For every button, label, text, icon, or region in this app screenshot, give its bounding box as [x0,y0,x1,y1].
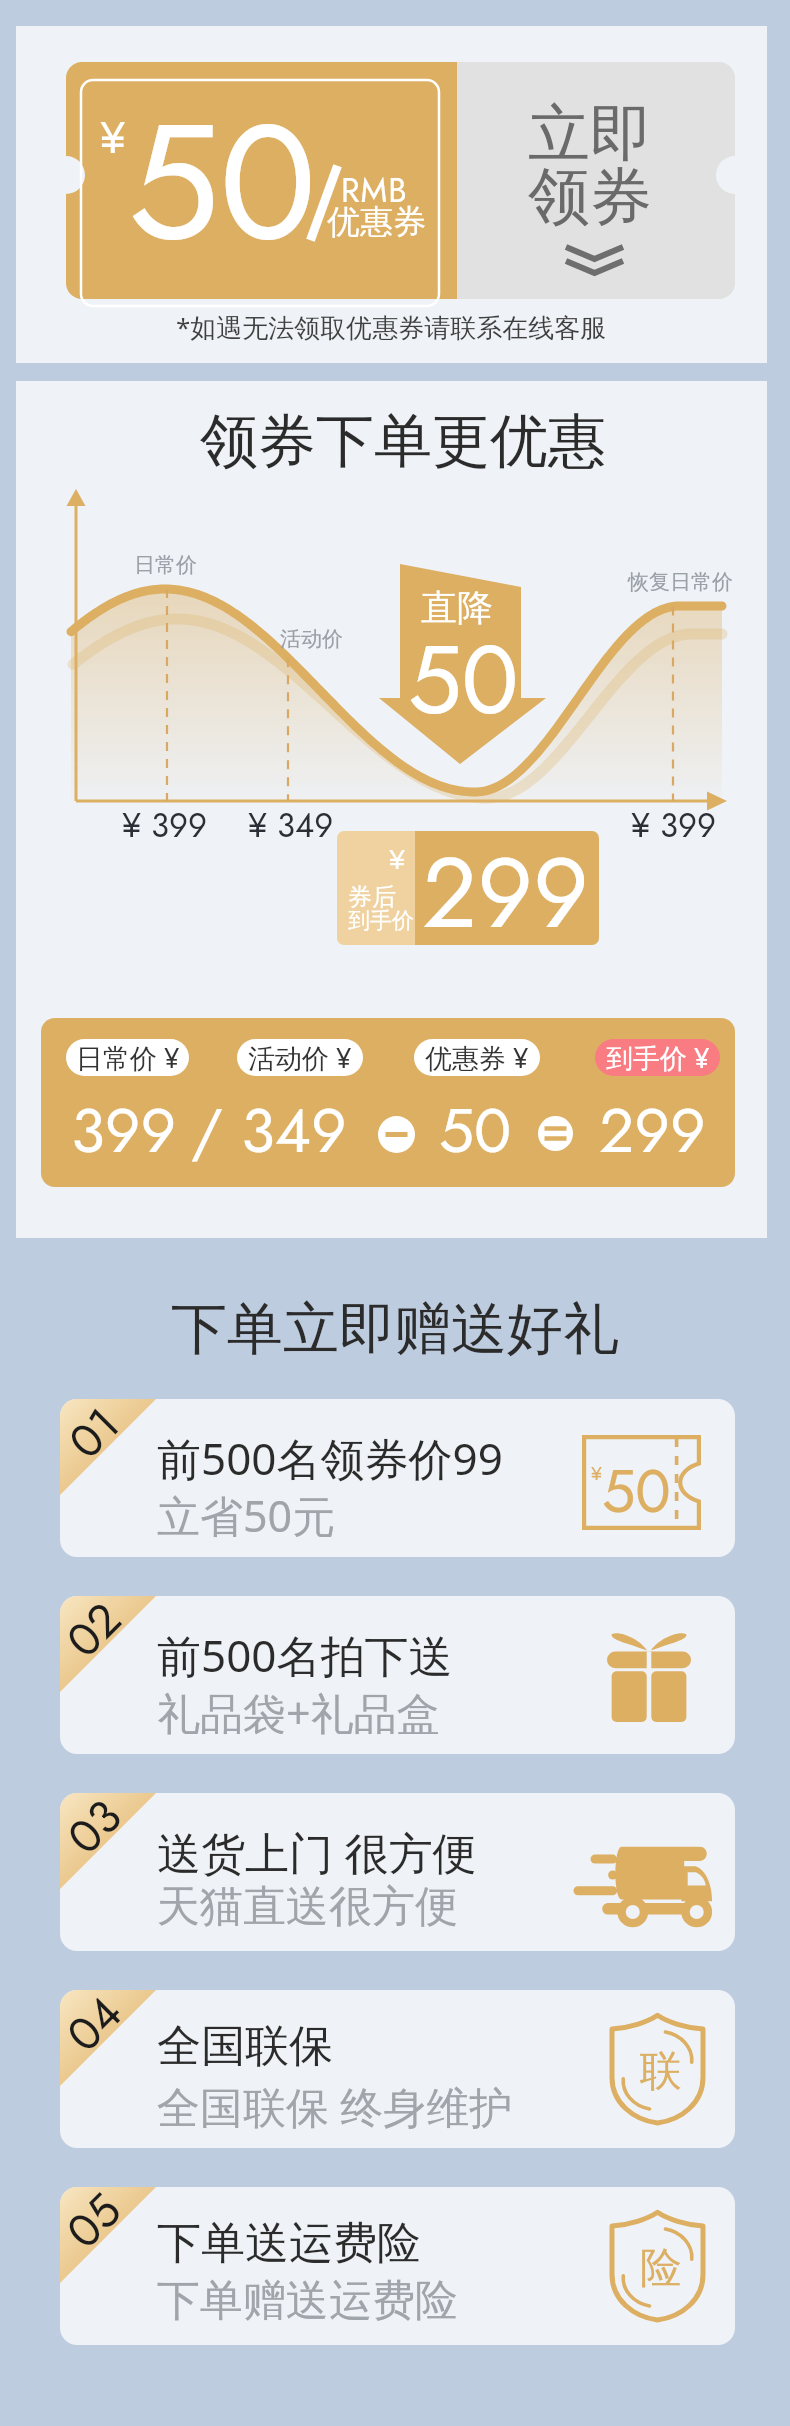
staticText: 优惠券 [327,201,426,243]
button[interactable]: 券后 [337,831,599,945]
staticText: 恢复日常价 [628,569,733,595]
staticText: RMB [341,167,408,215]
staticText: 优惠券 ¥ [425,1039,529,1076]
staticText: / [191,1086,223,1176]
staticText: 02 [60,1596,131,1667]
other: 险 [607,2210,708,2325]
staticText: 399 [71,1086,177,1176]
button[interactable]: 日常价 ¥ [66,1039,189,1076]
staticText: 券后 [348,882,396,912]
staticText: 下单赠送运费险 [157,2274,458,2328]
button[interactable]: 日常价 ¥ [41,1018,735,1187]
staticText: 活动价 ¥ [248,1039,352,1076]
staticText: ¥ 399 [122,802,208,850]
staticText: 01 [60,1399,129,1468]
staticText: 299 [599,1086,706,1176]
staticText: 到手价 ¥ [606,1039,710,1076]
staticText: 全国联保 [157,2019,333,2074]
staticText: 50 [439,1086,512,1176]
staticText: 日常价 [134,552,197,578]
staticText: 下单立即赠送好礼 [0,1294,790,1365]
staticText: 05 [60,2187,131,2258]
other: 送货 [573,1838,712,1926]
button[interactable]: ¥ [66,62,735,299]
button[interactable]: 03 [60,1793,735,1951]
staticText: 立省50元 [157,1486,336,1545]
button[interactable]: 02 [60,1596,735,1754]
staticText: 全国联保 终身维护 [157,2077,513,2136]
staticText: 立即 [528,95,652,173]
staticText: 到手价 [348,907,414,935]
button[interactable]: 05 [60,2187,735,2345]
staticText: ¥ [389,839,406,879]
staticText: ¥ 349 [248,802,334,850]
staticText: 领券下单更优惠 [200,405,606,478]
staticText: 03 [60,1793,131,1863]
staticText: 直降 [421,585,493,630]
staticText: 活动价 [280,626,343,652]
staticText: 日常价 ¥ [76,1039,180,1076]
staticText: ¥ [591,1460,603,1487]
button[interactable]: 04 [60,1990,735,2148]
staticText: 联 [640,2045,682,2098]
staticText: *如遇无法领取优惠券请联系在线客服 [176,309,607,345]
staticText: 50 [128,65,317,299]
staticText: 领券 [528,158,652,236]
staticText: 299 [422,831,589,937]
other: 礼品 [607,1631,691,1722]
staticText: ¥ [100,106,126,170]
staticText: 349 [241,1086,347,1176]
staticText: 前500名拍下送 [157,1625,453,1685]
staticText: 礼品袋+礼品盒 [157,1683,440,1742]
staticText: ¥ 399 [631,802,717,850]
button[interactable]: 到手价 ¥ [595,1039,720,1076]
staticText: 送货上门 很方便 [157,1822,477,1882]
staticText: 下单送运费险 [157,2216,421,2271]
staticText: 前500名领券价99 [157,1428,503,1488]
staticText: 04 [60,1990,131,2061]
other: 优惠券 [582,1435,701,1530]
staticText: 险 [640,2242,682,2295]
staticText: 50 [602,1449,671,1534]
staticText: 天猫直送很方便 [157,1880,458,1934]
staticText: 50 [408,611,519,748]
other: 联 [607,2013,708,2128]
button[interactable]: 活动价 ¥ [237,1039,363,1076]
button[interactable]: 01 [60,1399,735,1557]
button[interactable]: 优惠券 ¥ [414,1039,540,1076]
